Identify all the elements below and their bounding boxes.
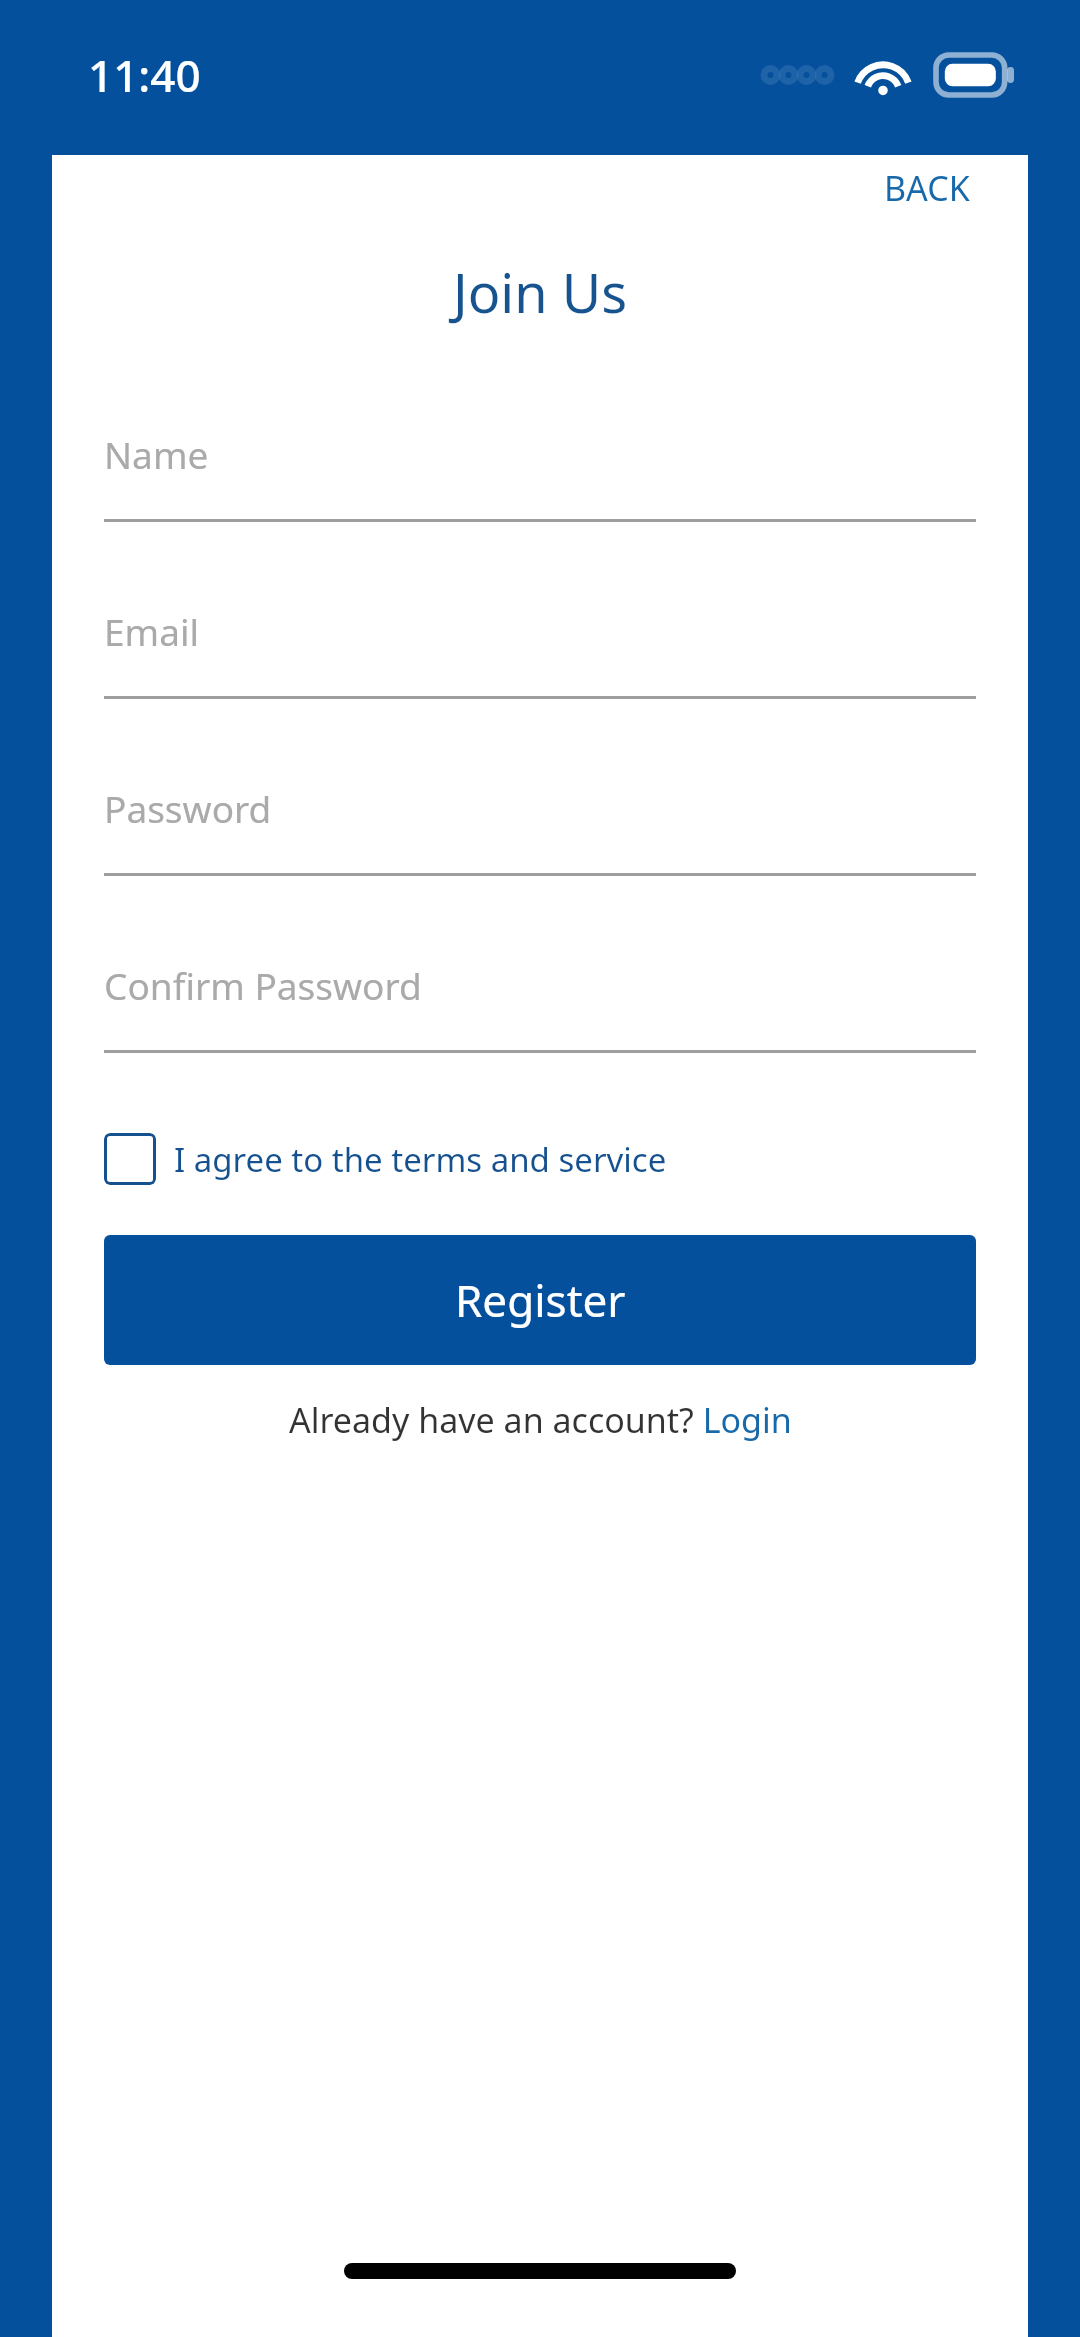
staticText: Already have an account? Login xyxy=(289,1397,792,1443)
button[interactable]: Confirm Password xyxy=(104,920,976,1050)
staticText: 11:40 xyxy=(88,45,201,105)
button[interactable]: BACK xyxy=(878,155,976,221)
staticText: Name xyxy=(104,429,209,479)
button[interactable]: Email xyxy=(104,566,976,696)
button[interactable]: Password xyxy=(104,743,976,873)
staticText: I agree to the terms and service xyxy=(174,1137,667,1182)
staticText: Email xyxy=(104,606,200,656)
button[interactable]: I agree to the terms and service xyxy=(104,1125,976,1193)
staticText: Join Us xyxy=(104,255,976,329)
button[interactable]: Name xyxy=(104,389,976,519)
staticText: Confirm Password xyxy=(104,960,422,1010)
button[interactable]: Register xyxy=(104,1235,976,1365)
button[interactable]: Already have an account? Login xyxy=(289,1393,792,1447)
staticText: Register xyxy=(455,1270,626,1330)
staticText: BACK xyxy=(884,165,970,211)
staticText: Password xyxy=(104,783,272,833)
